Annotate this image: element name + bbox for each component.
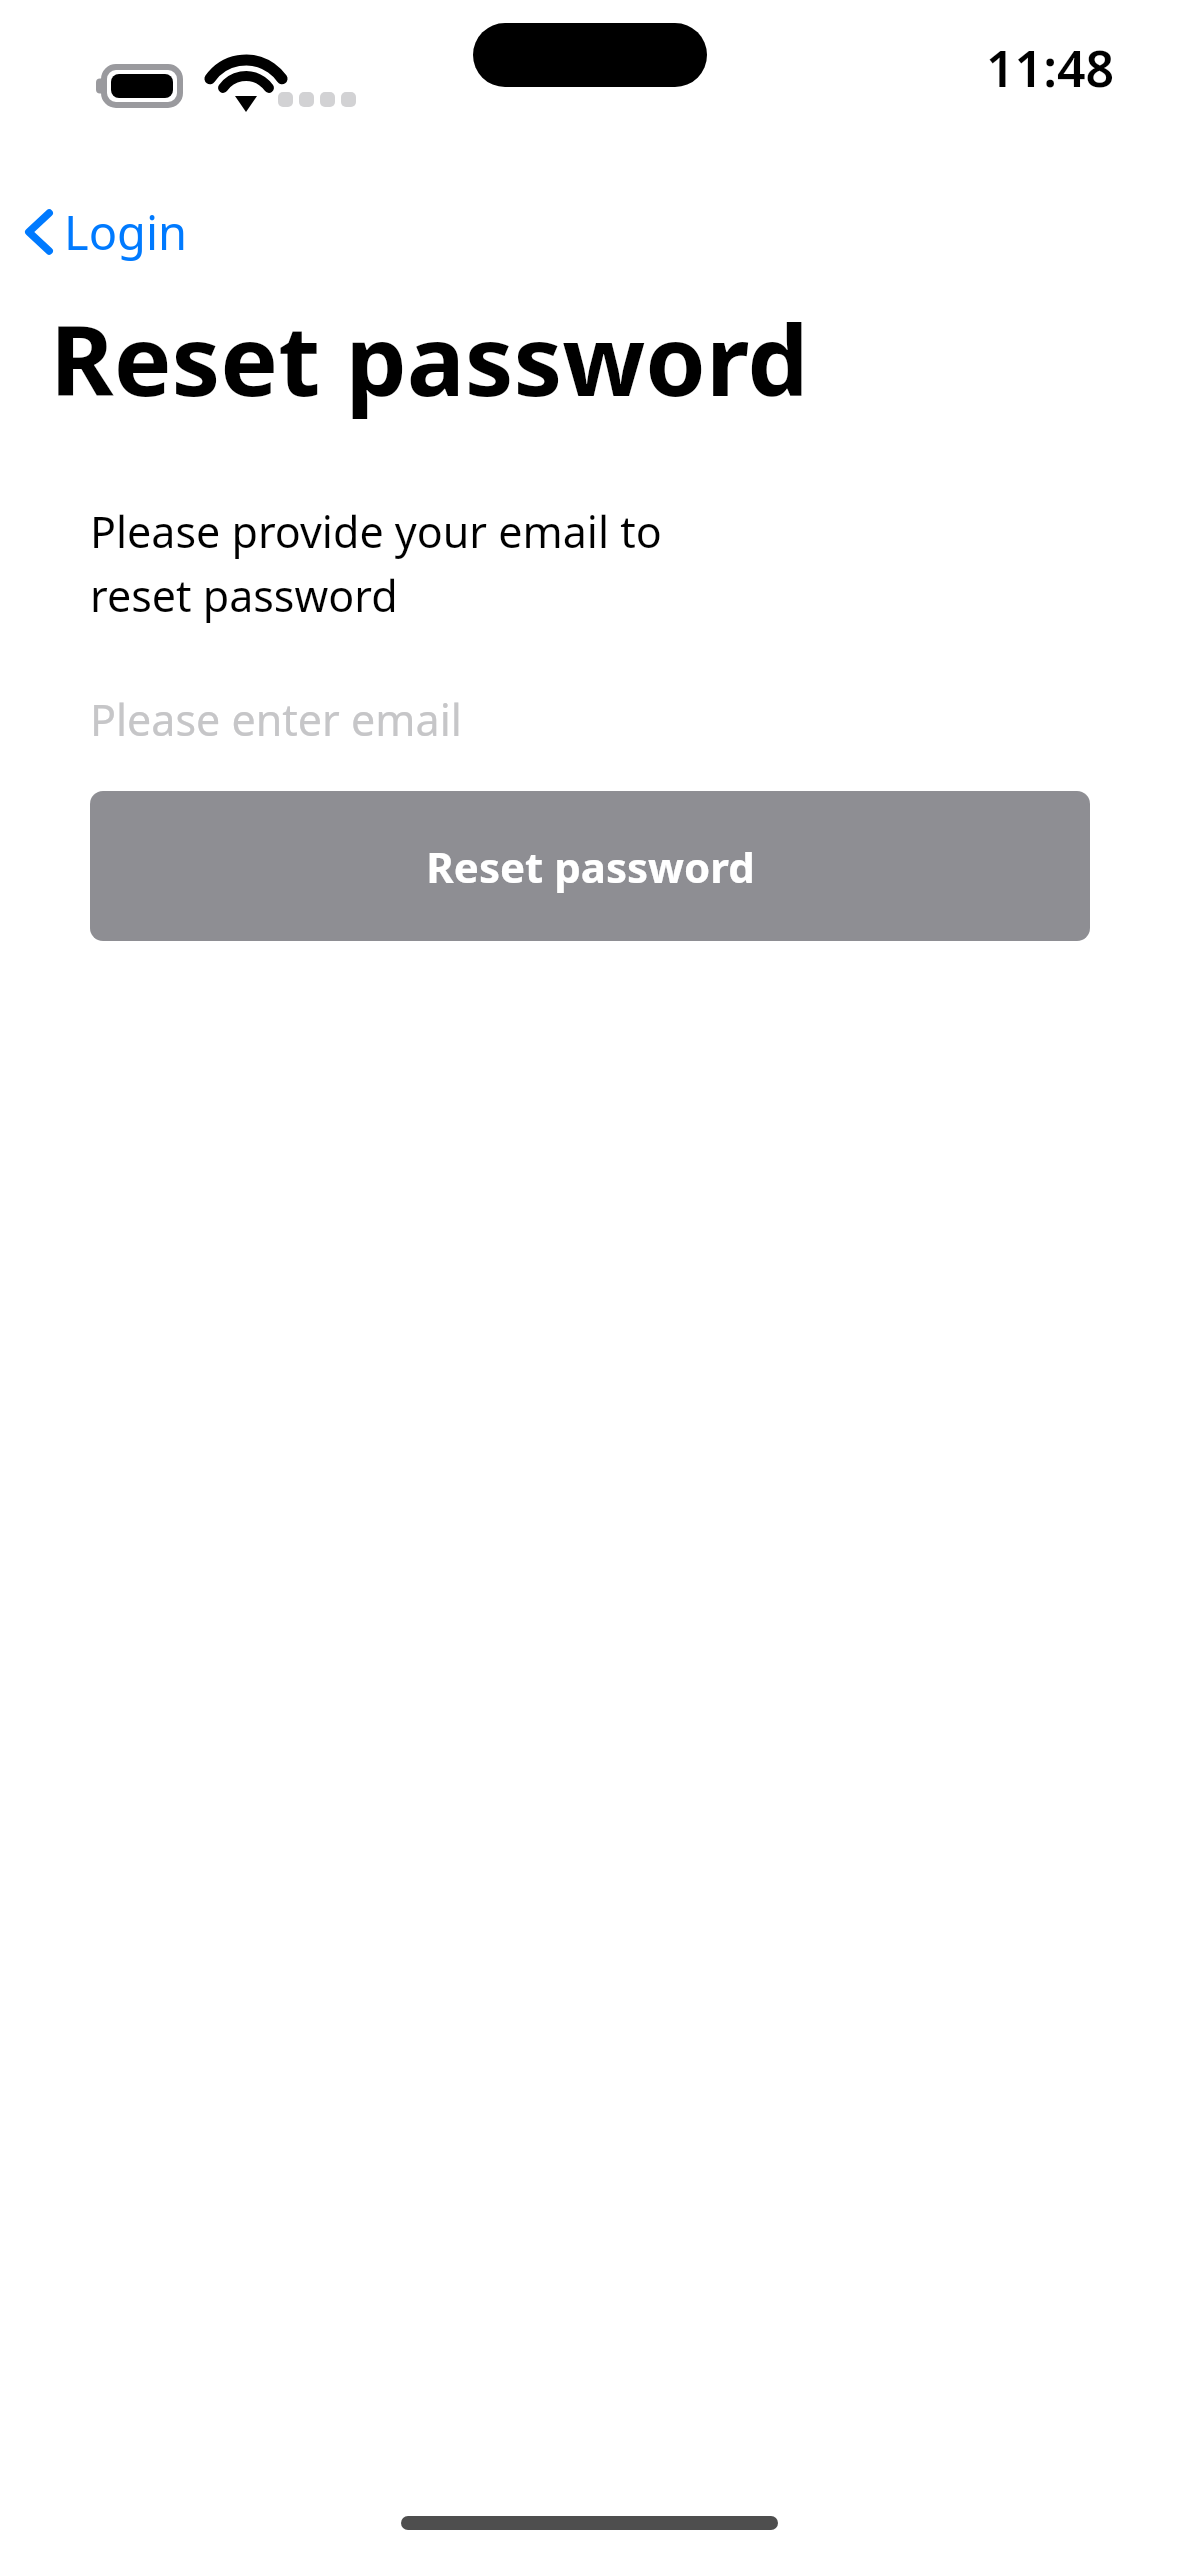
button[interactable]: Reset password bbox=[90, 791, 1090, 941]
staticText: Reset password bbox=[426, 838, 755, 895]
staticText: Reset password bbox=[50, 292, 809, 424]
staticText: Please provide your email to reset passw… bbox=[90, 502, 662, 625]
button[interactable]: Login bbox=[14, 196, 204, 268]
staticText: Please enter email bbox=[90, 690, 462, 749]
staticText: 11:48 bbox=[986, 34, 1115, 102]
button[interactable]: Please enter email bbox=[90, 673, 1089, 765]
staticText: Login bbox=[64, 200, 188, 264]
